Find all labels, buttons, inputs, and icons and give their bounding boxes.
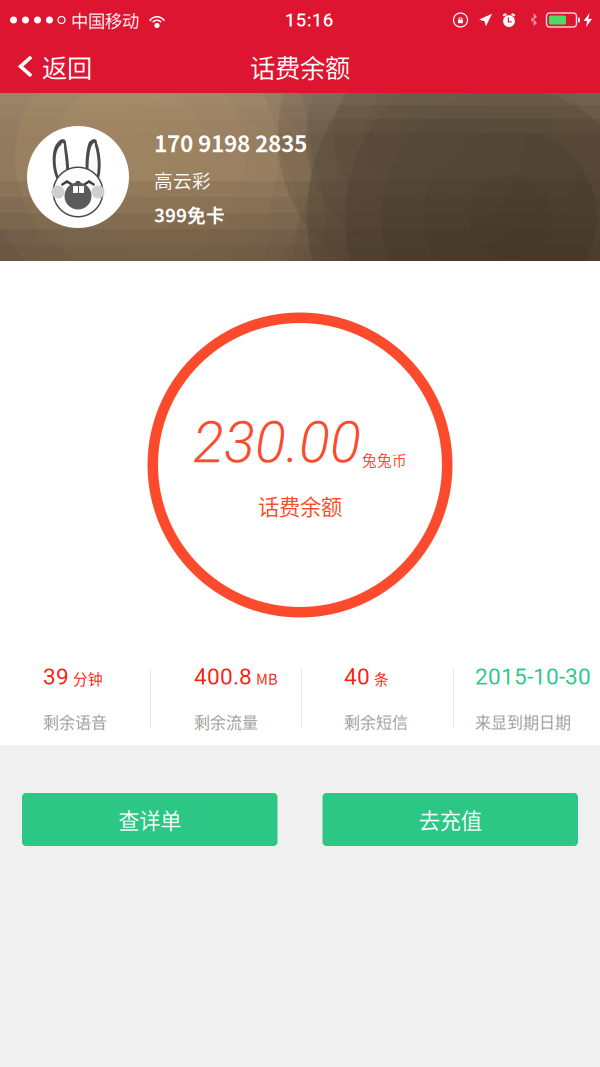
staticText: 40 <box>344 663 370 690</box>
staticText: 条 <box>374 668 389 689</box>
staticText: 剩余语音 <box>43 710 107 733</box>
staticText: 兔兔币 <box>362 449 407 470</box>
staticText: 来显到期日期 <box>475 710 571 733</box>
button[interactable]: 查详单 <box>22 793 277 846</box>
staticText: 去充值 <box>419 804 482 835</box>
staticText: 话费余额 <box>258 490 342 521</box>
button[interactable]: 返回 <box>0 38 106 95</box>
staticText: 返回 <box>42 48 92 85</box>
staticText: 15:16 <box>285 9 334 31</box>
staticText: 2015-10-30 <box>475 663 591 690</box>
staticText: 中国移动 <box>71 7 139 33</box>
staticText: 分钟 <box>73 668 103 689</box>
staticText: 剩余短信 <box>344 710 408 733</box>
staticText: 剩余流量 <box>194 710 258 733</box>
staticText: MB <box>256 668 278 689</box>
staticText: 话费余额 <box>250 48 350 85</box>
staticText: 高云彩 <box>154 166 211 193</box>
button[interactable]: 去充值 <box>322 793 578 846</box>
staticText: 400.8 <box>194 663 252 690</box>
staticText: 查详单 <box>118 804 181 835</box>
staticText: 170 9198 2835 <box>154 126 307 159</box>
staticText: 39 <box>43 663 69 690</box>
staticText: 399免卡 <box>154 201 225 228</box>
staticText: 230.00 <box>193 409 361 476</box>
